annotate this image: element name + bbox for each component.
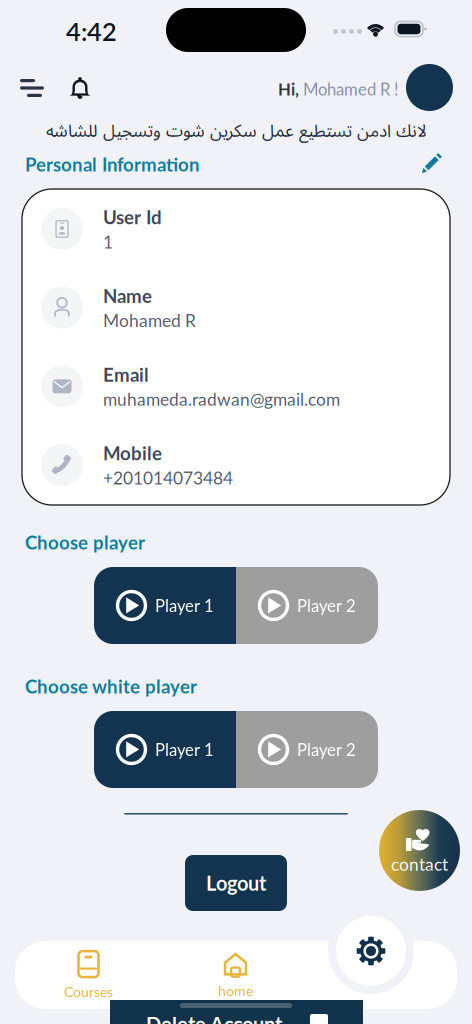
button[interactable]: Notifications [65,74,95,102]
staticText: Mohamed R [103,310,196,331]
button[interactable]: Logout [185,855,287,911]
button[interactable]: Menu [15,73,49,103]
staticText: Personal Information [25,153,200,175]
staticText: Courses [64,983,113,1000]
button[interactable]: Player 1 [94,711,236,788]
staticText: 1 [103,231,113,252]
staticText: muhameda.radwan@gmail.com [103,389,340,409]
staticText: Name [103,285,152,307]
button[interactable]: home [162,941,309,1009]
staticText: Player 1 [155,595,214,615]
staticText: home [218,982,253,999]
staticText: Choose player [25,531,145,553]
staticText: 4:42 [66,16,117,46]
staticText: Email [103,363,149,386]
button[interactable]: Settings [309,941,457,1009]
button[interactable]: Settings [336,916,406,986]
staticText: User Id [103,206,162,228]
button[interactable]: Player 2 [236,711,378,788]
staticText: Hi, [278,79,299,99]
button[interactable]: contact [379,810,460,891]
button[interactable]: Player 1 [94,567,236,644]
staticText: Player 2 [297,739,356,759]
staticText: contact [391,854,448,874]
button[interactable]: Edit [420,152,444,175]
staticText: +201014073484 [103,467,233,488]
staticText: Player 2 [297,595,356,615]
button[interactable]: Courses [15,941,162,1009]
staticText: Mobile [103,442,162,464]
staticText: Delete Account [146,1012,282,1024]
button[interactable]: Player 2 [236,567,378,644]
staticText: Choose white player [25,675,197,697]
staticText: Mohamed R ! [299,79,398,99]
staticText: Logout [206,871,266,895]
staticText: لانك ادمن تستطيع عمل سكرين شوت وتسجيل لل… [45,113,426,150]
staticText: Player 1 [155,739,214,759]
